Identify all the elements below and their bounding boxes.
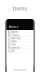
button[interactable]: Charlie [6,36,33,40]
staticText: Echo [7,41,15,47]
staticText: Golf [7,48,14,53]
button[interactable]: Golf [6,49,33,52]
staticText: Foxtrot [7,45,19,50]
staticText: Alpha [7,29,17,34]
button[interactable]: Delta [6,40,33,43]
button[interactable]: Alpha [6,30,33,33]
staticText: Bravo [7,32,18,37]
button[interactable]: Bravo [6,33,33,36]
staticText: Charlie [7,35,20,40]
staticText: Delta [7,38,16,44]
staticText: Items [8,24,18,29]
button[interactable]: Echo [6,43,33,46]
button[interactable]: Foxtrot [6,46,33,49]
staticText: Items [12,5,27,12]
